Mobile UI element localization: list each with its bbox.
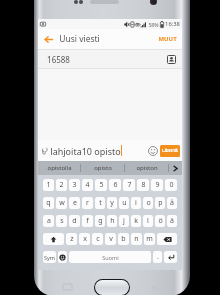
button[interactable]: p xyxy=(155,197,165,209)
staticText: ö xyxy=(158,216,163,226)
button[interactable]: Attach xyxy=(38,140,50,161)
staticText: Uusi viesti xyxy=(59,33,100,45)
button[interactable]: 6 xyxy=(109,179,121,191)
button[interactable]: k xyxy=(131,215,141,227)
staticText: 1 xyxy=(46,180,51,190)
staticText: f xyxy=(86,216,89,226)
staticText: t xyxy=(99,198,102,208)
staticText: m xyxy=(146,234,153,244)
button[interactable]: v xyxy=(105,233,116,245)
button[interactable] xyxy=(43,233,64,245)
staticText: 58% xyxy=(148,21,159,28)
button[interactable]: 2 xyxy=(56,179,67,191)
button[interactable]: z xyxy=(66,233,77,245)
button[interactable]: 9 xyxy=(151,179,163,191)
staticText: 6 xyxy=(113,180,118,190)
staticText: i xyxy=(135,198,137,208)
button[interactable]: e xyxy=(69,197,80,209)
button[interactable]: a xyxy=(43,215,54,227)
staticText: k xyxy=(134,216,138,226)
staticText: u xyxy=(122,198,127,208)
button[interactable]: o xyxy=(143,197,153,209)
button[interactable]: 0 xyxy=(165,179,177,191)
button[interactable] xyxy=(58,251,67,263)
button[interactable]: g xyxy=(95,215,105,227)
button[interactable]: More suggestions xyxy=(169,161,182,175)
button[interactable]: q xyxy=(43,197,54,209)
staticText: e xyxy=(73,198,77,208)
staticText: opistolla xyxy=(47,164,72,172)
button[interactable]: ä xyxy=(167,215,177,227)
button[interactable]: opiston xyxy=(125,161,169,175)
button[interactable]: 8 xyxy=(137,179,149,191)
button[interactable]: opisto xyxy=(81,161,125,175)
button[interactable]: i xyxy=(131,197,141,209)
button[interactable]: MUUT xyxy=(153,29,182,49)
button[interactable]: LÄHETÄ xyxy=(160,145,180,157)
button[interactable]: b xyxy=(118,233,129,245)
button[interactable]: h xyxy=(107,215,117,227)
button[interactable]: 4 xyxy=(82,179,93,191)
staticText: 16588 xyxy=(47,54,70,65)
button[interactable]: Recents xyxy=(58,280,76,294)
button[interactable] xyxy=(157,233,177,245)
button[interactable]: 3 xyxy=(69,179,80,191)
button[interactable]: u xyxy=(119,197,129,209)
button[interactable]: Home xyxy=(95,280,129,295)
staticText: Sym xyxy=(44,254,55,261)
button[interactable]: x xyxy=(79,233,90,245)
staticText: 5 xyxy=(99,180,104,190)
button[interactable]: m xyxy=(144,233,155,245)
staticText: 2 xyxy=(59,180,64,190)
button[interactable]: y xyxy=(107,197,117,209)
button[interactable]: 1 xyxy=(43,179,54,191)
staticText: 4 xyxy=(85,180,90,190)
button[interactable]: 5 xyxy=(95,179,107,191)
staticText: j xyxy=(123,216,125,226)
button[interactable]: 7 xyxy=(123,179,135,191)
button[interactable]: r xyxy=(82,197,93,209)
staticText: c xyxy=(96,234,100,244)
button[interactable]: d xyxy=(69,215,80,227)
button[interactable]: Suomi xyxy=(69,251,151,263)
staticText: lahjoita10 opisto xyxy=(50,145,121,157)
button[interactable]: Sym xyxy=(43,251,56,263)
button[interactable]: å xyxy=(167,197,177,209)
staticText: opiston xyxy=(136,164,158,172)
button[interactable]: Emoji xyxy=(146,140,159,161)
staticText: d xyxy=(72,216,77,226)
staticText: y xyxy=(110,198,114,208)
button[interactable]: ö xyxy=(155,215,165,227)
button[interactable]: Contacts xyxy=(163,49,179,69)
staticText: Suomi xyxy=(102,254,119,261)
button[interactable]: s xyxy=(56,215,67,227)
staticText: h xyxy=(110,216,115,226)
button[interactable]: n xyxy=(131,233,142,245)
button[interactable]: c xyxy=(92,233,103,245)
staticText: w xyxy=(59,198,65,208)
staticText: p xyxy=(158,198,163,208)
button[interactable]: f xyxy=(82,215,93,227)
staticText: n xyxy=(134,234,139,244)
button[interactable]: w xyxy=(56,197,67,209)
button[interactable]: . xyxy=(153,251,162,263)
staticText: 9 xyxy=(155,180,160,190)
staticText: q xyxy=(46,198,51,208)
staticText: opisto xyxy=(94,164,112,172)
staticText: o xyxy=(146,198,151,208)
staticText: l xyxy=(147,216,149,226)
staticText: 16:38 xyxy=(165,20,180,28)
button[interactable]: j xyxy=(119,215,129,227)
staticText: b xyxy=(121,234,126,244)
staticText: . xyxy=(157,252,159,262)
staticText: å xyxy=(170,198,174,208)
button[interactable]: opistolla xyxy=(38,161,81,175)
staticText: LÄHETÄ xyxy=(162,148,178,154)
staticText: x xyxy=(83,234,87,244)
staticText: v xyxy=(109,234,113,244)
button[interactable]: l xyxy=(143,215,153,227)
button[interactable]: t xyxy=(95,197,105,209)
button[interactable] xyxy=(164,251,177,263)
button[interactable]: Back xyxy=(38,29,59,49)
